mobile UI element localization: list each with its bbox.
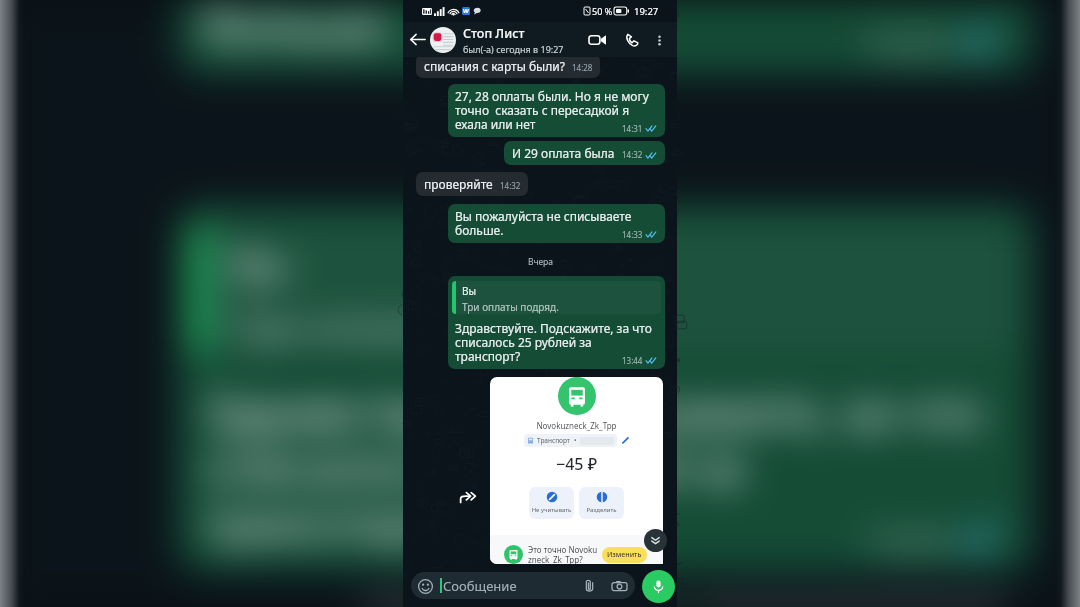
staticText: Здравствуйте. Подскажите, за что списало… [204,379,1006,556]
button[interactable]: Вы [177,205,1034,572]
staticText: 13:44 [864,517,947,560]
staticText: 14:33 [864,19,947,63]
button[interactable]: More options [651,32,667,48]
staticText: Сообщение [443,577,517,595]
staticText: 14:32 [500,180,521,191]
staticText: Три оплаты подряд. [232,300,615,355]
button[interactable]: проверяйте [416,172,528,196]
staticText: списания с карты были? [424,58,565,74]
button[interactable]: Не учитывать [529,487,574,519]
button[interactable]: Изменить [602,547,647,563]
staticText: Вчера [493,126,591,173]
button[interactable]: Voice call [622,30,642,50]
button[interactable]: Вы пожалуйста не списываете больше. [448,204,665,243]
staticText: Транспорт [537,436,570,445]
button[interactable]: И 29 оплата была [504,141,665,165]
button[interactable]: Emoji [411,572,635,599]
staticText: −45 ₽ [556,453,598,475]
staticText: 14:32 [622,149,643,160]
button[interactable]: Camera [612,578,627,593]
staticText: Это точно Novoku zneck_Zk_Tpp? [528,544,598,564]
staticText: W [463,7,469,15]
staticText: был(-а) сегодня в 19:27 [463,43,564,55]
button[interactable]: Forward [457,486,479,508]
staticText: Вы пожалуйста не списываете больше. [455,208,658,239]
button[interactable]: Video call [585,28,609,52]
button[interactable]: Attach [582,578,597,593]
staticText: Вы пожалуйста не списываете больше. [204,0,1006,59]
staticText: 50 % [592,5,613,17]
button[interactable]: Edit [621,436,630,445]
staticText: Вы [462,284,477,298]
staticText: Вы [232,236,291,292]
staticText: Вчера [528,256,553,268]
staticText: Не учитывать [529,506,574,514]
staticText: 19:27 [634,5,659,18]
staticText: 27, 28 оплаты были. Но я не могу точно с… [455,88,658,133]
button[interactable]: Вы [448,276,665,369]
staticText: проверяйте [424,176,493,192]
button[interactable]: Вы пожалуйста не списываете больше. [177,0,1034,75]
button[interactable]: Разделить [579,487,624,519]
button[interactable]: Novokuzneck_Zk_Tpp [490,377,663,564]
button[interactable]: Emoji [417,578,433,594]
staticText: Novokuzneck_Zk_Tpp [536,420,617,431]
staticText: • [574,436,577,445]
button[interactable]: 27, 28 оплаты были. Но я не могу точно с… [448,84,665,137]
button[interactable]: Voice message [642,570,675,603]
staticText: Здравствуйте. Подскажите, за что списало… [455,320,658,365]
staticText: 13:44 [622,355,643,366]
staticText: 14:33 [622,229,643,240]
button[interactable]: Scroll to bottom [644,529,667,552]
staticText: Изменить [607,550,642,560]
button[interactable]: Back [406,28,429,51]
staticText: Три оплаты подряд. [462,300,559,314]
staticText: Стоп Лист [463,25,525,42]
staticText: 14:31 [622,123,643,134]
staticText: И 29 оплата была [512,145,615,161]
button[interactable]: Novokuzneck_Zk_Tpp [342,604,1026,607]
button[interactable]: списания с карты были? [416,57,600,78]
staticText: 14:28 [572,62,593,73]
staticText: Разделить [579,506,624,514]
